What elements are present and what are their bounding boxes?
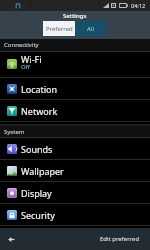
- button[interactable]: Network: [0, 100, 150, 122]
- button[interactable]: Preferred: [43, 21, 75, 36]
- button[interactable]: Back: [4, 232, 18, 246]
- staticText: System: [4, 128, 25, 136]
- button[interactable]: Edit preferred: [100, 235, 140, 243]
- staticText: All: [87, 25, 94, 33]
- button[interactable]: All: [75, 21, 106, 36]
- staticText: Edit preferred: [100, 235, 140, 243]
- button[interactable]: Location: [0, 78, 150, 100]
- button[interactable]: Sounds: [0, 138, 150, 160]
- staticText: Preferred: [46, 25, 73, 33]
- button[interactable]: Display: [0, 182, 150, 204]
- staticText: 04:12: [131, 2, 146, 9]
- staticText: Network: [21, 105, 58, 117]
- button[interactable]: Security: [0, 204, 150, 226]
- staticText: Settings: [63, 12, 87, 20]
- staticText: Sounds: [21, 143, 53, 155]
- button[interactable]: Wi-Fi: [0, 52, 150, 78]
- staticText: Wi-Fi: [21, 53, 42, 65]
- staticText: Location: [21, 83, 58, 95]
- staticText: Off: [21, 63, 30, 71]
- staticText: Wallpaper: [21, 165, 64, 177]
- staticText: Connectivity: [4, 41, 39, 49]
- staticText: Security: [21, 209, 55, 221]
- button[interactable]: Wallpaper: [0, 160, 150, 182]
- staticText: Display: [21, 187, 52, 199]
